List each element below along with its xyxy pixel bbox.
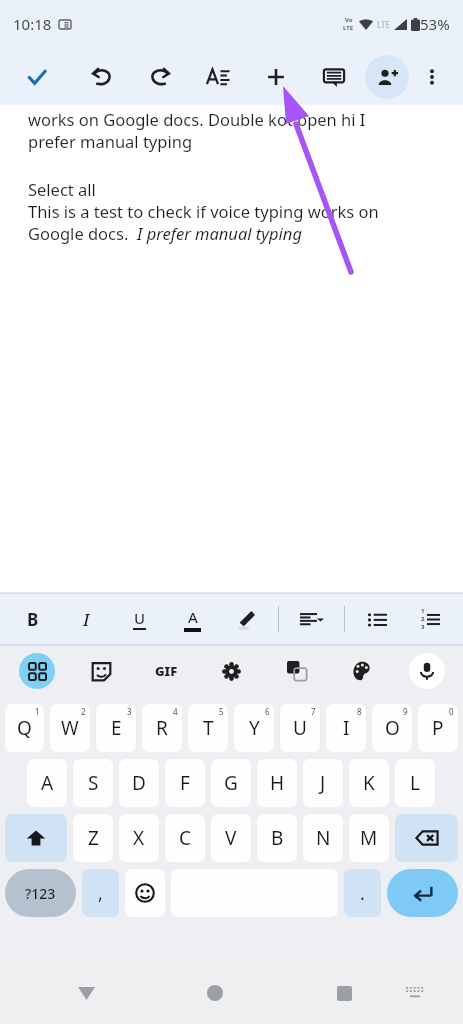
staticText: O <box>385 715 400 741</box>
button[interactable]: G <box>211 759 251 807</box>
button[interactable]: Underline <box>113 593 166 645</box>
staticText: L <box>410 770 420 796</box>
button[interactable]: O <box>372 704 412 752</box>
staticText: F <box>180 770 190 796</box>
staticText: A <box>188 607 198 627</box>
staticText: S <box>88 770 99 796</box>
button[interactable]: Apps <box>19 653 55 689</box>
button[interactable]: T <box>188 704 228 752</box>
staticText: U <box>293 715 307 741</box>
button[interactable]: More options <box>413 58 451 96</box>
button[interactable]: Stickers <box>69 645 134 697</box>
button[interactable]: P <box>418 704 458 752</box>
staticText: U <box>134 608 146 628</box>
button[interactable]: Insert <box>257 58 295 96</box>
staticText: A <box>41 770 54 796</box>
button[interactable]: F <box>165 759 205 807</box>
button[interactable]: N <box>303 814 343 862</box>
staticText: 3 <box>127 706 132 717</box>
button[interactable]: Enter <box>387 869 458 917</box>
staticText: 4 <box>173 706 178 717</box>
button[interactable]: Shift <box>5 814 67 862</box>
button[interactable]: Share <box>365 55 409 99</box>
staticText: I <box>83 608 90 631</box>
button[interactable]: Settings <box>199 645 264 697</box>
staticText: B <box>27 608 39 631</box>
staticText: 2 <box>81 706 86 717</box>
button[interactable]: Themes <box>329 645 394 697</box>
button[interactable]: Italic <box>60 593 113 645</box>
staticText: Z <box>88 825 99 851</box>
button[interactable]: D <box>119 759 159 807</box>
staticText: C <box>179 825 192 851</box>
button[interactable]: Bold <box>6 593 60 645</box>
button[interactable]: Switch keyboard <box>397 975 433 1011</box>
staticText: W <box>61 715 79 741</box>
button[interactable]: Y <box>234 704 274 752</box>
button[interactable]: Redo <box>141 58 179 96</box>
button[interactable]: Z <box>73 814 113 862</box>
button[interactable]: Voice input <box>409 653 445 689</box>
button[interactable]: E <box>96 704 136 752</box>
button[interactable]: Text color <box>166 593 219 645</box>
button[interactable]: works on Google docs. Double kot open hi… <box>0 105 463 593</box>
button[interactable]: J <box>303 759 343 807</box>
button[interactable]: B <box>257 814 297 862</box>
staticText: I <box>343 715 350 741</box>
button[interactable]: V <box>211 814 251 862</box>
button[interactable]: ?123 <box>5 869 76 917</box>
staticText: 1 <box>421 607 425 615</box>
button[interactable]: Bulleted list <box>351 593 404 645</box>
staticText: Vo <box>345 16 353 24</box>
staticText: Google docs. <box>28 222 137 244</box>
button[interactable]: K <box>349 759 389 807</box>
button[interactable]: Q <box>5 704 44 752</box>
button[interactable]: H <box>257 759 297 807</box>
button[interactable]: M <box>349 814 389 862</box>
button[interactable]: Alignment <box>285 593 338 645</box>
staticText: . <box>360 881 365 906</box>
staticText: B <box>271 825 284 851</box>
button[interactable]: Done <box>18 58 56 96</box>
button[interactable]: Highlight <box>219 593 272 645</box>
staticText: H <box>270 770 285 796</box>
button[interactable]: C <box>165 814 205 862</box>
button[interactable]: R <box>142 704 182 752</box>
button[interactable]: Translate <box>264 645 329 697</box>
button[interactable]: W <box>50 704 90 752</box>
button[interactable]: U <box>280 704 320 752</box>
staticText: K <box>363 770 375 796</box>
staticText: LTE <box>343 24 354 32</box>
staticText: 0 <box>449 706 454 717</box>
staticText: 7 <box>311 706 316 717</box>
staticText: 53% <box>420 14 450 34</box>
button[interactable]: Undo <box>83 58 121 96</box>
staticText: works on Google docs. Double kot open hi… <box>28 108 366 130</box>
button[interactable]: Emoji <box>125 869 165 917</box>
button[interactable]: Numbered list <box>404 593 457 645</box>
button[interactable]: Period <box>344 869 381 917</box>
button[interactable]: Recents <box>324 973 364 1013</box>
button[interactable]: L <box>395 759 435 807</box>
staticText: LTE <box>377 19 391 30</box>
button[interactable]: I <box>326 704 366 752</box>
button[interactable]: X <box>119 814 159 862</box>
staticText: 10:18 <box>13 14 52 34</box>
button[interactable]: S <box>73 759 113 807</box>
staticText: ?123 <box>25 884 56 903</box>
staticText: P <box>432 715 444 741</box>
staticText: prefer manual typing <box>28 130 193 152</box>
staticText: J <box>320 770 326 796</box>
button[interactable]: Comma <box>82 869 119 917</box>
button[interactable]: A <box>27 759 67 807</box>
button[interactable]: GIF <box>134 645 199 697</box>
staticText: 2 <box>421 615 425 623</box>
staticText: This is a test to check if voice typing … <box>28 200 379 222</box>
button[interactable]: Backspace <box>395 814 458 862</box>
button[interactable]: Back <box>66 973 106 1013</box>
button[interactable]: Comments <box>315 58 353 96</box>
button[interactable]: Home <box>195 973 235 1013</box>
button[interactable]: Text formatting <box>199 58 237 96</box>
staticText: 6 <box>265 706 270 717</box>
